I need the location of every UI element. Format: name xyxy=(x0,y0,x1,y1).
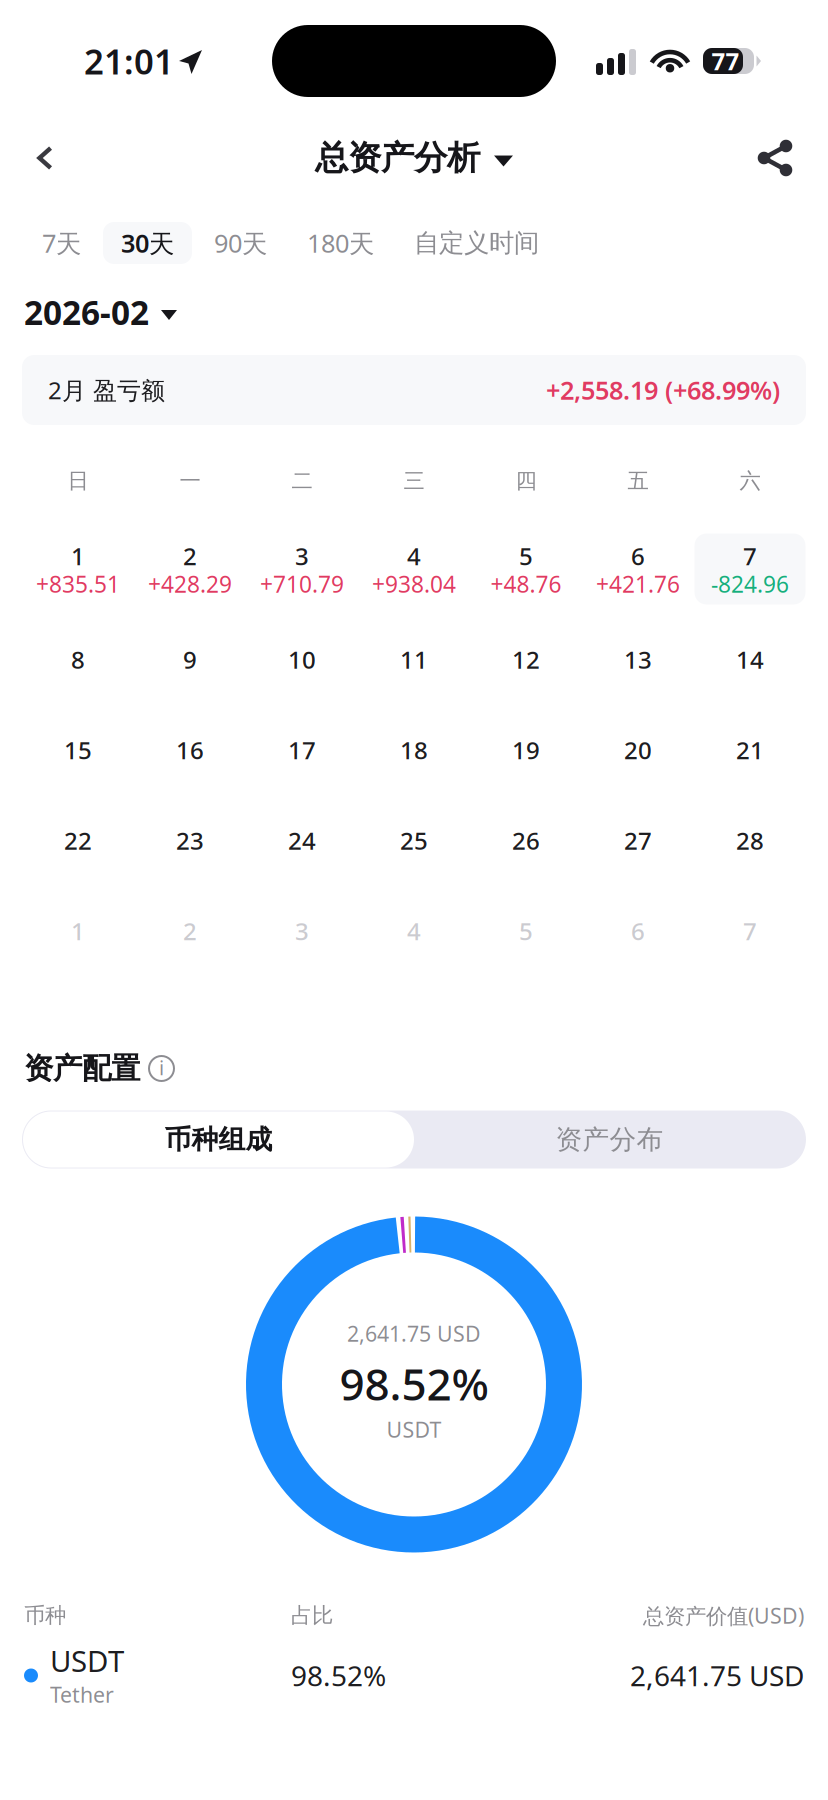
staticText: 15 xyxy=(64,734,92,766)
button[interactable]: 22 xyxy=(22,805,134,876)
staticText: 二 xyxy=(291,468,312,494)
button[interactable]: 总资产分析 xyxy=(295,116,533,200)
button[interactable]: 28 xyxy=(694,805,806,876)
staticText: 19 xyxy=(512,734,540,766)
button[interactable]: 10 xyxy=(246,624,358,695)
button[interactable]: Share xyxy=(731,116,819,200)
button[interactable]: 15 xyxy=(22,714,134,785)
button[interactable]: 90天 xyxy=(196,222,285,264)
staticText: 2 xyxy=(183,540,197,572)
button[interactable]: 2026-02 xyxy=(0,289,828,335)
button[interactable]: 2 xyxy=(134,533,246,604)
button[interactable]: 币种组成 xyxy=(23,1111,414,1167)
staticText: 22 xyxy=(64,825,92,856)
staticText: 7 xyxy=(743,540,757,572)
button[interactable]: 5 xyxy=(470,895,582,966)
button[interactable]: 7 xyxy=(694,533,806,604)
button[interactable]: 自定义时间 xyxy=(396,222,557,264)
staticText: 180天 xyxy=(307,226,374,260)
staticText: 1 xyxy=(71,540,85,572)
button[interactable]: 2 xyxy=(134,895,246,966)
button[interactable]: 5 xyxy=(470,533,582,604)
button[interactable]: 12 xyxy=(470,624,582,695)
staticText: 24 xyxy=(288,825,316,856)
button[interactable]: 资产分布 xyxy=(414,1111,805,1167)
staticText: 2,641.75 USD xyxy=(347,1319,481,1348)
staticText: 总资产分析 xyxy=(315,137,480,178)
button[interactable]: 26 xyxy=(470,805,582,876)
staticText: 1 xyxy=(71,915,85,947)
button[interactable]: 7天 xyxy=(24,222,99,264)
staticText: 2026-02 xyxy=(24,290,149,334)
button[interactable]: 6 xyxy=(582,533,694,604)
staticText: 2 xyxy=(183,915,197,947)
button[interactable]: 180天 xyxy=(289,222,392,264)
staticText: +2,558.19 (+68.99%) xyxy=(546,373,780,407)
staticText: 三 xyxy=(403,468,424,494)
staticText: 5 xyxy=(519,540,533,572)
button[interactable]: Info xyxy=(140,1046,184,1090)
staticText: 一 xyxy=(179,468,200,494)
button[interactable]: 24 xyxy=(246,805,358,876)
staticText: 5 xyxy=(519,915,533,947)
staticText: 12 xyxy=(512,644,540,675)
button[interactable]: 9 xyxy=(134,624,246,695)
staticText: +421.76 xyxy=(596,569,680,599)
button[interactable]: 1 xyxy=(22,533,134,604)
staticText: 17 xyxy=(288,734,316,766)
staticText: 9 xyxy=(183,644,197,675)
button[interactable]: 4 xyxy=(358,895,470,966)
staticText: 六 xyxy=(739,468,760,494)
button[interactable]: 16 xyxy=(134,714,246,785)
staticText: 98.52% xyxy=(291,1657,386,1694)
staticText: 30天 xyxy=(121,226,174,260)
staticText: 6 xyxy=(631,540,645,572)
button[interactable]: 20 xyxy=(582,714,694,785)
staticText: 占比 xyxy=(291,1602,333,1629)
staticText: 4 xyxy=(407,915,421,947)
staticText: 6 xyxy=(631,915,645,947)
button[interactable]: 25 xyxy=(358,805,470,876)
staticText: i xyxy=(159,1054,164,1081)
staticText: 8 xyxy=(71,644,85,675)
staticText: 25 xyxy=(400,825,428,856)
button[interactable]: 27 xyxy=(582,805,694,876)
staticText: 98.52% xyxy=(339,1354,488,1413)
button[interactable]: 1 xyxy=(22,895,134,966)
staticText: 77 xyxy=(711,45,739,77)
button[interactable]: 3 xyxy=(246,895,358,966)
staticText: 21:01 xyxy=(84,38,174,84)
staticText: 28 xyxy=(736,825,764,856)
button[interactable]: 6 xyxy=(582,895,694,966)
staticText: 14 xyxy=(736,644,764,675)
staticText: 16 xyxy=(176,734,204,766)
button[interactable]: 14 xyxy=(694,624,806,695)
button[interactable]: 17 xyxy=(246,714,358,785)
staticText: 币种组成 xyxy=(164,1123,272,1156)
staticText: 23 xyxy=(176,825,204,856)
button[interactable]: 3 xyxy=(246,533,358,604)
button[interactable]: 8 xyxy=(22,624,134,695)
button[interactable]: 4 xyxy=(358,533,470,604)
staticText: +710.79 xyxy=(260,569,344,599)
button[interactable]: 18 xyxy=(358,714,470,785)
staticText: 资产配置 xyxy=(24,1050,140,1086)
staticText: +938.04 xyxy=(372,569,456,599)
staticText: 4 xyxy=(407,540,421,572)
button[interactable]: Back xyxy=(1,116,89,200)
button[interactable]: 13 xyxy=(582,624,694,695)
staticText: 7天 xyxy=(42,226,81,260)
staticText: -824.96 xyxy=(711,569,789,599)
staticText: 币种 xyxy=(24,1602,66,1629)
button[interactable]: 11 xyxy=(358,624,470,695)
button[interactable]: 7 xyxy=(694,895,806,966)
staticText: USDT xyxy=(50,1641,124,1680)
staticText: 10 xyxy=(288,644,316,675)
staticText: 18 xyxy=(400,734,428,766)
button[interactable]: 19 xyxy=(470,714,582,785)
staticText: 90天 xyxy=(214,226,267,260)
staticText: USDT xyxy=(386,1415,441,1444)
button[interactable]: 21 xyxy=(694,714,806,785)
button[interactable]: 30天 xyxy=(103,222,192,264)
button[interactable]: 23 xyxy=(134,805,246,876)
